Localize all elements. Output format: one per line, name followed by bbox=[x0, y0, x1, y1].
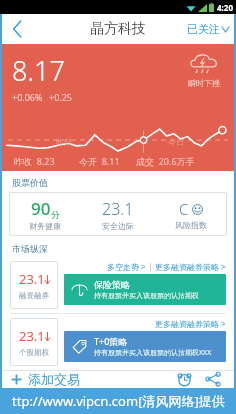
staticText: 财务健康 bbox=[29, 221, 61, 231]
button[interactable]: 已关注 bbox=[187, 22, 229, 36]
button[interactable]: Back bbox=[2, 14, 32, 44]
staticText: 风险指数 bbox=[175, 220, 207, 230]
button[interactable]: 更多融资融券策略 > bbox=[155, 318, 226, 329]
staticText: 瞬时下挫 bbox=[188, 78, 220, 88]
button[interactable]: 多空走势 > bbox=[107, 261, 146, 272]
staticText: 晶方科技 bbox=[90, 20, 146, 38]
staticText: 安全边际 bbox=[102, 221, 134, 231]
staticText: 23.1 bbox=[19, 270, 45, 288]
staticText: +0.06% bbox=[12, 91, 43, 103]
button[interactable]: 更多融资融券策略 > bbox=[155, 261, 226, 272]
staticText: T+0策略 bbox=[94, 335, 128, 347]
staticText: 持有股票并买入该股票的认沽期权XXX...... bbox=[94, 291, 222, 300]
staticText: 23.1 bbox=[19, 327, 45, 345]
staticText: 已关注 bbox=[187, 22, 220, 36]
staticText: 股票价值 bbox=[12, 177, 48, 188]
staticText: 更多融资融券策略 > bbox=[155, 261, 226, 272]
button[interactable]: T+0策略 bbox=[64, 331, 226, 362]
staticText: 多空走势 > bbox=[107, 261, 146, 272]
button[interactable]: 23.1 bbox=[10, 261, 58, 309]
staticText: 今日 bbox=[168, 137, 184, 147]
button[interactable]: Alarm bbox=[173, 370, 195, 388]
staticText: 今开 8.11 bbox=[79, 155, 120, 167]
button[interactable]: 保险策略 bbox=[64, 274, 226, 305]
staticText: +0.25 bbox=[49, 91, 73, 103]
staticText: 昨日 bbox=[56, 137, 72, 147]
staticText: 市场纵深 bbox=[12, 243, 48, 254]
staticText: 更多融资融券策略 > bbox=[155, 318, 226, 329]
staticText: 保险策略 bbox=[94, 279, 130, 290]
staticText: 23.1 bbox=[102, 198, 134, 220]
staticText: 个股期权 bbox=[19, 348, 49, 357]
staticText: 融资融券 bbox=[19, 291, 49, 300]
staticText: 添加交易 bbox=[28, 371, 80, 387]
staticText: 成交 20.6万手 bbox=[136, 155, 195, 167]
button[interactable]: Share bbox=[202, 370, 224, 388]
button[interactable]: 添加交易 bbox=[10, 371, 80, 387]
staticText: 8.17 bbox=[12, 52, 65, 89]
staticText: 4:20 bbox=[217, 2, 233, 13]
staticText: 昨收 8.23 bbox=[14, 155, 55, 167]
staticText: ttp://www.vipcn.com[清风网络]提供 bbox=[12, 392, 225, 410]
button[interactable]: 瞬时下挫 bbox=[188, 52, 220, 88]
staticText: 分 bbox=[51, 209, 60, 220]
button[interactable]: 23.1 bbox=[10, 318, 58, 366]
staticText: 持有股票并买入该股票的认沽期权XXX bbox=[94, 348, 212, 358]
button[interactable]: 90 bbox=[9, 192, 227, 236]
staticText: C bbox=[179, 199, 189, 219]
staticText: 90 bbox=[31, 197, 51, 220]
